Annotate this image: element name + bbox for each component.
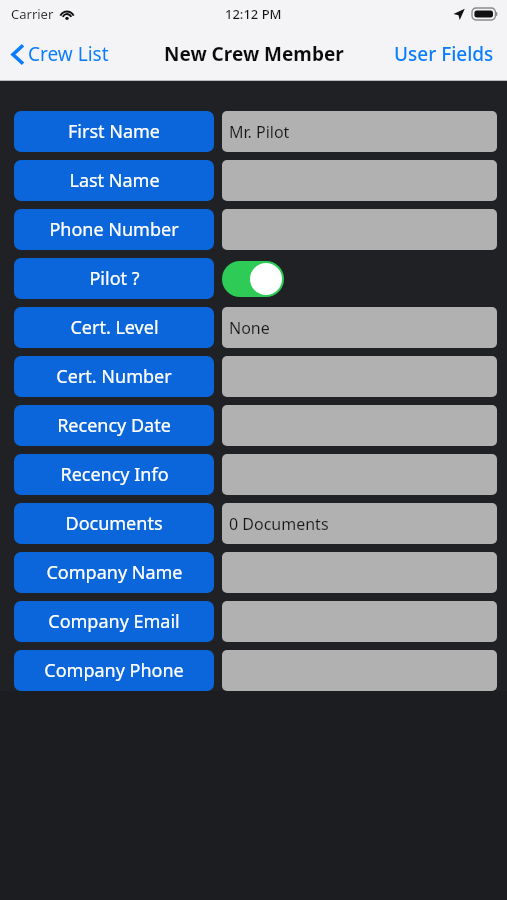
staticText: Cert. Level (70, 315, 159, 340)
button[interactable] (222, 356, 497, 397)
staticText: Pilot ? (89, 266, 140, 291)
button[interactable]: 0 Documents (222, 503, 497, 544)
staticText: User Fields (394, 41, 494, 67)
button[interactable] (222, 454, 497, 495)
staticText: Last Name (69, 168, 160, 193)
button[interactable]: First Name (14, 111, 214, 152)
button[interactable]: Company Email (14, 601, 214, 642)
button[interactable] (222, 209, 497, 250)
button[interactable]: Last Name (14, 160, 214, 201)
button[interactable]: None (222, 307, 497, 348)
staticText: None (229, 317, 270, 339)
button[interactable]: Cert. Number (14, 356, 214, 397)
button[interactable]: Cert. Level (14, 307, 214, 348)
staticText: Carrier (11, 5, 54, 23)
button[interactable] (222, 405, 497, 446)
staticText: 12:12 PM (225, 5, 282, 23)
button[interactable]: Crew List (0, 35, 119, 73)
button[interactable]: Recency Info (14, 454, 214, 495)
staticText: Recency Info (60, 462, 169, 487)
staticText: Documents (65, 511, 163, 536)
staticText: Company Phone (44, 658, 184, 683)
button[interactable] (222, 650, 497, 691)
button[interactable]: Pilot, on (222, 261, 284, 297)
staticText: Company Email (48, 609, 180, 634)
button[interactable] (222, 160, 497, 201)
button[interactable]: Phone Number (14, 209, 214, 250)
staticText: 0 Documents (229, 513, 329, 535)
button[interactable]: Company Name (14, 552, 214, 593)
button[interactable]: Recency Date (14, 405, 214, 446)
staticText: Recency Date (57, 413, 171, 438)
button[interactable]: User Fields (384, 35, 507, 73)
staticText: Company Name (46, 560, 183, 585)
button[interactable]: Pilot ? (14, 258, 214, 299)
button[interactable] (222, 601, 497, 642)
staticText: First Name (68, 119, 160, 144)
button[interactable]: Company Phone (14, 650, 214, 691)
staticText: Mr. Pilot (229, 121, 290, 143)
staticText: Crew List (28, 41, 109, 67)
button[interactable]: Documents (14, 503, 214, 544)
staticText: Cert. Number (56, 364, 172, 389)
button[interactable]: Mr. Pilot (222, 111, 497, 152)
button[interactable] (222, 552, 497, 593)
staticText: Phone Number (49, 217, 179, 242)
staticText: New Crew Member (164, 41, 344, 67)
